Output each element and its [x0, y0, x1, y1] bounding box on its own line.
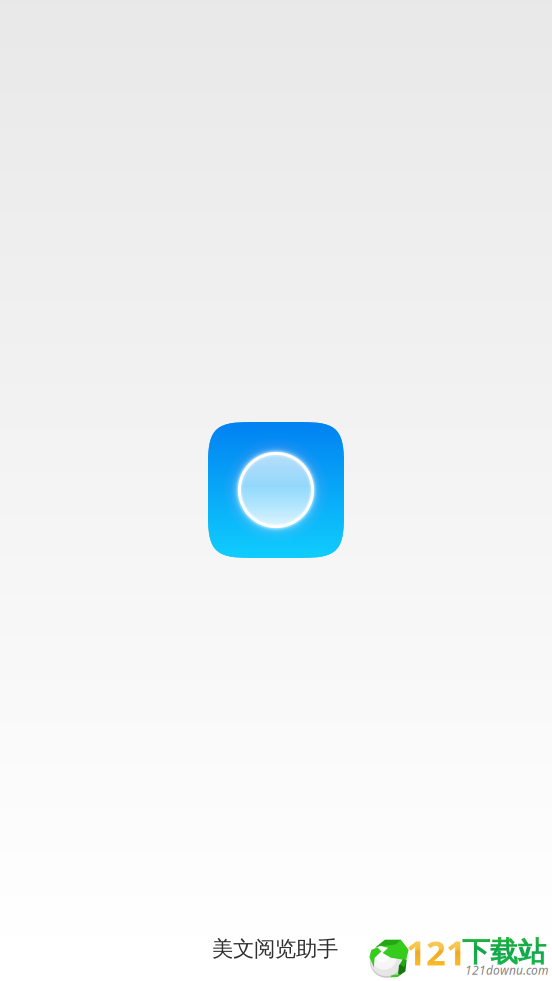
- button[interactable]: 121下载站: [369, 935, 549, 981]
- staticText: 121downu.com: [465, 962, 549, 978]
- staticText: 美文阅览助手: [212, 936, 338, 962]
